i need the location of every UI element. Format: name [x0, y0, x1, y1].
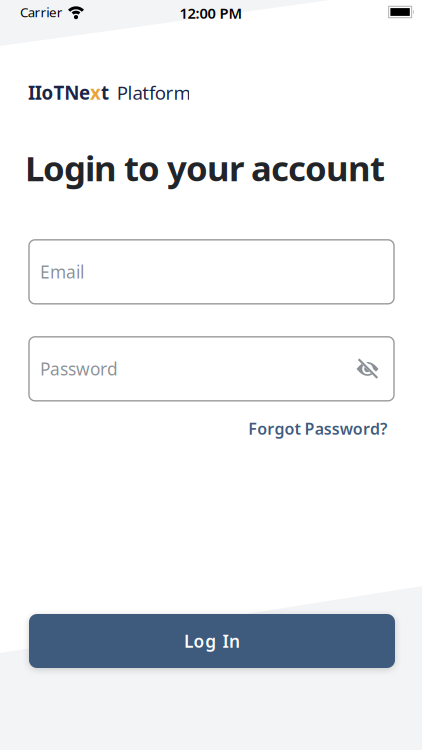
staticText: Email	[40, 260, 84, 283]
staticText: t	[101, 80, 109, 105]
staticText: Password	[40, 357, 118, 380]
staticText: Platform	[112, 80, 190, 105]
staticText: Log In	[184, 629, 240, 652]
button[interactable]: Show password	[356, 359, 379, 379]
staticText: Forgot Password?	[248, 418, 387, 439]
button[interactable]: Log In	[29, 614, 395, 668]
staticText: Carrier	[20, 3, 63, 21]
staticText: 12:00 PM	[179, 3, 242, 23]
staticText: IIoTNe	[28, 80, 90, 105]
staticText: Login to your account	[25, 145, 385, 191]
staticText: x	[90, 80, 101, 105]
button[interactable]: Forgot Password?	[248, 418, 387, 439]
